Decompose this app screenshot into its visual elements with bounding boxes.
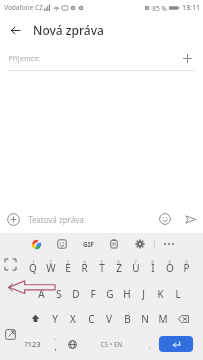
button[interactable]: B	[118, 306, 136, 331]
staticText: X	[70, 312, 76, 326]
button[interactable]: A	[33, 281, 50, 306]
staticText: U	[132, 261, 140, 275]
staticText: T	[99, 261, 105, 275]
button[interactable]: Clipboard	[105, 235, 123, 253]
button[interactable]: Textová zpráva	[26, 205, 153, 233]
button[interactable]: More options	[160, 235, 178, 253]
staticText: 7	[134, 259, 137, 265]
button[interactable]: F	[84, 281, 101, 306]
button[interactable]: Shift	[24, 306, 46, 331]
staticText: Q	[29, 261, 37, 275]
staticText: Y	[52, 312, 58, 326]
staticText: M	[158, 312, 168, 326]
button[interactable]: Příjemce:	[0, 45, 203, 70]
staticText: P	[183, 261, 190, 275]
button[interactable]: Settings	[131, 235, 149, 253]
staticText: 13:11	[182, 3, 200, 13]
button[interactable]: Move keyboard	[4, 328, 17, 341]
button[interactable]: S	[50, 281, 67, 306]
staticText: H	[123, 287, 131, 301]
staticText: F	[90, 287, 96, 301]
staticText: GIF	[83, 240, 94, 249]
button[interactable]: Google search	[26, 234, 46, 254]
button[interactable]: Back	[0, 15, 30, 45]
staticText: O	[166, 261, 174, 275]
staticText: K	[157, 287, 164, 301]
staticText: D	[72, 287, 80, 301]
staticText: L	[175, 287, 181, 301]
button[interactable]: G	[101, 281, 118, 306]
button[interactable]: 0	[178, 255, 195, 281]
button[interactable]: Add recipient	[175, 46, 199, 70]
staticText: Textová zpráva	[28, 214, 84, 225]
staticText: R	[81, 261, 88, 275]
staticText: CS • EN	[100, 340, 123, 349]
button[interactable]: GIF	[78, 234, 98, 254]
button[interactable]: 5	[93, 255, 110, 281]
staticText: Nová zpráva	[33, 22, 104, 38]
staticText: 0	[185, 259, 188, 265]
button[interactable]: N	[136, 306, 154, 331]
staticText: C	[88, 312, 95, 326]
staticText: °	[54, 337, 57, 344]
staticText: G	[106, 287, 114, 301]
staticText: B	[124, 312, 131, 326]
button[interactable]: 8	[144, 255, 161, 281]
staticText: 85 %	[152, 4, 167, 13]
button[interactable]: ?123	[18, 331, 47, 357]
button[interactable]: Send	[177, 206, 203, 232]
button[interactable]: CS • EN	[83, 331, 140, 357]
staticText: 9	[168, 259, 171, 265]
button[interactable]: 4	[76, 255, 93, 281]
button[interactable]: C	[82, 306, 100, 331]
staticText: 6	[117, 259, 120, 265]
button[interactable]: Backspace	[172, 306, 195, 331]
staticText: 8	[151, 259, 154, 265]
staticText: Příjemce:	[8, 53, 41, 63]
staticText: 4	[83, 259, 86, 265]
staticText: 1	[32, 259, 35, 265]
staticText: I	[151, 261, 155, 275]
staticText: Vodafone CZ	[4, 3, 43, 12]
button[interactable]: Period	[142, 331, 157, 357]
button[interactable]: K	[152, 281, 169, 306]
button[interactable]: Comma	[47, 331, 64, 357]
button[interactable]: M	[154, 306, 172, 331]
button[interactable]: Attach	[0, 206, 26, 232]
button[interactable]: V	[100, 306, 118, 331]
button[interactable]: Stickers	[53, 235, 71, 253]
button[interactable]: 1	[24, 255, 42, 281]
button[interactable]: H	[118, 281, 135, 306]
button[interactable]: L	[169, 281, 186, 306]
staticText: 2	[49, 259, 52, 265]
staticText: 3	[66, 259, 69, 265]
staticText: ?123	[24, 339, 41, 349]
button[interactable]: 7	[127, 255, 144, 281]
button[interactable]: Enter	[159, 336, 193, 352]
staticText: ,	[54, 341, 57, 352]
button[interactable]: Collapse keyboard	[3, 280, 17, 294]
staticText: W	[46, 261, 56, 275]
button[interactable]: Emoji	[153, 207, 177, 231]
button[interactable]: 2	[42, 255, 59, 281]
staticText: Z	[116, 261, 122, 275]
button[interactable]: Y	[46, 306, 64, 331]
button[interactable]: X	[64, 306, 82, 331]
staticText: J	[142, 287, 145, 301]
button[interactable]: J	[135, 281, 152, 306]
staticText: .	[148, 339, 151, 350]
staticText: S	[56, 287, 62, 301]
staticText: 5	[100, 259, 103, 265]
button[interactable]: 3	[59, 255, 76, 281]
staticText: V	[106, 312, 112, 326]
staticText: A	[38, 287, 45, 301]
button[interactable]: 6	[110, 255, 127, 281]
button[interactable]: 9	[161, 255, 178, 281]
staticText: E	[65, 261, 71, 275]
button[interactable]: Change language	[64, 331, 81, 357]
staticText: N	[141, 312, 149, 326]
button[interactable]: D	[67, 281, 84, 306]
